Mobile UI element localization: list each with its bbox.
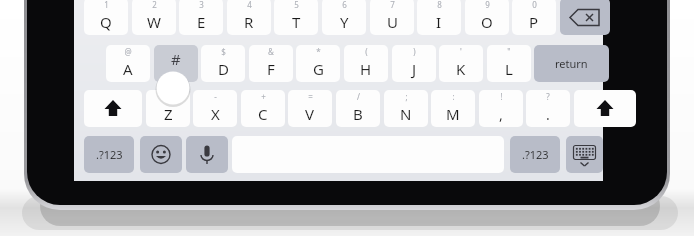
button[interactable]: 8 [417, 0, 461, 35]
button[interactable]: 4 [227, 0, 271, 35]
button[interactable]: ; [384, 90, 428, 127]
staticText: .?123 [96, 147, 123, 162]
staticText: M [446, 104, 460, 124]
staticText: Z [164, 104, 173, 124]
staticText: V [305, 104, 315, 124]
staticText: ; [405, 91, 408, 102]
button[interactable]: Delete [560, 0, 610, 35]
staticText: 0 [532, 0, 537, 10]
button[interactable]: & [249, 45, 293, 82]
staticText: Y [340, 12, 349, 32]
staticText: T [292, 12, 301, 32]
button[interactable]: % [146, 90, 190, 127]
button[interactable]: 7 [370, 0, 414, 35]
button[interactable]: * [296, 45, 340, 82]
staticText: I [436, 12, 442, 32]
button[interactable]: ? [526, 90, 570, 127]
staticText: ) [413, 46, 416, 57]
staticText: ! [500, 91, 503, 102]
button[interactable]: + [241, 90, 285, 127]
button[interactable]: @ [106, 45, 150, 82]
staticText: ' [460, 46, 462, 57]
button[interactable]: " [487, 45, 531, 82]
button[interactable]: Shift [84, 90, 142, 127]
button[interactable]: return [534, 45, 609, 82]
staticText: 4 [247, 0, 252, 10]
staticText: ? [546, 91, 550, 102]
staticText: G [313, 59, 324, 79]
staticText: - [214, 91, 217, 102]
button[interactable]: / [336, 90, 380, 127]
button[interactable]: # [154, 45, 198, 82]
staticText: X [211, 104, 220, 124]
staticText: C [258, 104, 268, 124]
staticText: N [400, 104, 412, 124]
button[interactable]: .?123 [84, 136, 134, 173]
button[interactable]: Hide keyboard [566, 136, 603, 173]
button[interactable]: 5 [274, 0, 318, 35]
button[interactable]: 6 [322, 0, 366, 35]
staticText: 5 [294, 0, 299, 10]
button[interactable]: $ [201, 45, 245, 82]
staticText: O [481, 12, 493, 32]
staticText: K [456, 59, 466, 79]
staticText: . [546, 105, 550, 124]
staticText: 7 [390, 0, 395, 10]
staticText: @ [124, 46, 132, 57]
staticText: B [353, 104, 363, 124]
staticText: L [505, 59, 513, 79]
button[interactable]: 1 [84, 0, 128, 35]
button[interactable]: : [431, 90, 475, 127]
button[interactable]: 9 [465, 0, 509, 35]
staticText: * [316, 46, 321, 57]
staticText: A [123, 59, 133, 79]
staticText: E [197, 12, 206, 32]
button[interactable]: ) [392, 45, 436, 82]
staticText: Q [100, 12, 112, 32]
button[interactable]: 0 [512, 0, 556, 35]
button[interactable]: = [288, 90, 332, 127]
staticText: 2 [152, 0, 157, 10]
staticText: R [244, 12, 254, 32]
staticText: D [218, 59, 229, 79]
staticText: P [529, 12, 539, 32]
button[interactable]: 3 [179, 0, 223, 35]
staticText: 8 [437, 0, 442, 10]
button[interactable]: .?123 [510, 136, 560, 173]
button[interactable]: Dictate [186, 136, 228, 173]
button[interactable]: Shift [574, 90, 636, 127]
button[interactable]: ( [344, 45, 388, 82]
staticText: + [261, 91, 266, 102]
staticText: F [267, 59, 275, 79]
staticText: ( [365, 46, 368, 57]
staticText: 3 [199, 0, 204, 10]
button[interactable]: ' [439, 45, 483, 82]
button[interactable]: Emoji [140, 136, 182, 173]
staticText: U [387, 12, 398, 32]
button[interactable]: - [193, 90, 237, 127]
staticText: , [499, 105, 503, 124]
staticText: " [507, 46, 511, 57]
button[interactable]: 2 [132, 0, 176, 35]
button[interactable]: ! [479, 90, 523, 127]
staticText: return [555, 56, 588, 71]
staticText: .?123 [522, 147, 549, 162]
button[interactable] [154, 45, 198, 82]
staticText: : [452, 91, 455, 102]
staticText: $ [221, 46, 226, 57]
staticText: 1 [104, 0, 109, 10]
staticText: # [171, 49, 181, 69]
staticText: 9 [485, 0, 490, 10]
staticText: & [268, 46, 274, 57]
staticText: = [308, 91, 313, 102]
staticText: 6 [342, 0, 347, 10]
staticText: W [147, 12, 161, 32]
staticText: H [360, 59, 372, 79]
staticText: / [357, 91, 360, 102]
staticText: J [412, 59, 417, 79]
